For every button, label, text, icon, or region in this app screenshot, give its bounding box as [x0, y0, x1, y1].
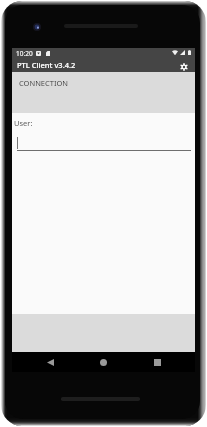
staticText: User: — [14, 118, 33, 128]
staticText: PTL Client v3.4.2 — [17, 60, 76, 70]
button[interactable]: Recents — [149, 354, 165, 370]
staticText: 10:20 — [16, 49, 33, 58]
button[interactable]: Back — [42, 354, 58, 370]
staticText: CONNECTION — [19, 78, 69, 88]
button[interactable]: Home — [95, 354, 111, 370]
button[interactable]: Settings — [176, 59, 192, 75]
